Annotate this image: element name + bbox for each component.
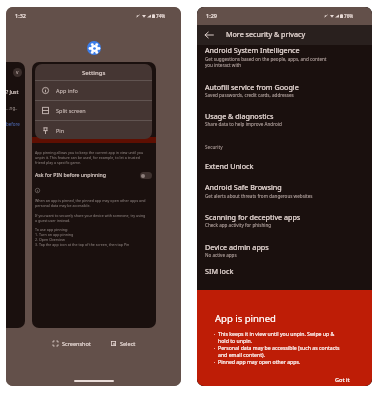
button[interactable]: Split screen xyxy=(35,101,152,120)
staticText: Settings xyxy=(82,69,106,77)
button[interactable] xyxy=(197,106,372,135)
staticText: Screenshot xyxy=(62,340,91,347)
staticText: Saved passwords, credit cards, addresses xyxy=(205,92,330,98)
staticText: Android Safe Browsing xyxy=(205,182,282,192)
staticText: Scanning for deceptive apps xyxy=(205,212,301,222)
staticText: SIM lock xyxy=(205,266,234,276)
staticText: · xyxy=(214,344,218,351)
button[interactable] xyxy=(197,207,372,236)
staticText: Security xyxy=(205,144,223,150)
button[interactable] xyxy=(197,40,372,69)
button[interactable] xyxy=(197,261,372,281)
button[interactable]: Screenshot xyxy=(53,340,91,347)
staticText: 1:29 xyxy=(206,12,217,19)
button[interactable]: Pin xyxy=(35,121,152,139)
staticText: Usage & diagnostics xyxy=(205,111,274,121)
button[interactable]: Select xyxy=(111,340,136,347)
staticText: To use app pinning: 1. Turn on app pinni… xyxy=(35,227,148,247)
staticText: When an app is pinned, the pinned app ma… xyxy=(35,198,148,208)
staticText: App pinning allows you to keep the curre… xyxy=(35,150,148,165)
button[interactable]: Back xyxy=(203,29,215,41)
staticText: Get suggestions based on the people, app… xyxy=(205,56,330,68)
button[interactable] xyxy=(197,177,372,206)
staticText: Pinned app may open other apps. xyxy=(218,358,342,365)
staticText: Share data to help improve Android xyxy=(205,121,330,127)
staticText: ...ng.. xyxy=(6,105,18,111)
staticText: 74% xyxy=(156,13,166,19)
staticText: This keeps it in view until you unpin. S… xyxy=(218,330,342,344)
button[interactable] xyxy=(197,156,372,176)
button[interactable] xyxy=(140,172,152,179)
button[interactable]: App info xyxy=(35,81,152,100)
staticText: Android System Intelligence xyxy=(205,45,300,55)
staticText: App info xyxy=(56,87,78,94)
staticText: No active apps xyxy=(205,252,330,258)
staticText: before xyxy=(6,121,20,127)
staticText: Split screen xyxy=(56,107,86,114)
staticText: Extend Unlock xyxy=(205,161,254,171)
staticText: App is pinned xyxy=(215,312,276,325)
staticText: · xyxy=(214,330,218,337)
staticText: 76% xyxy=(344,13,354,19)
staticText: 1:32 xyxy=(15,12,26,19)
staticText: V xyxy=(16,70,19,75)
staticText: Select xyxy=(120,340,136,347)
staticText: Got it xyxy=(335,376,350,384)
staticText: Pin xyxy=(56,127,65,134)
staticText: ? Just xyxy=(6,89,19,96)
staticText: Check app activity for phishing xyxy=(205,222,330,228)
staticText: Personal data may be accessible (such as… xyxy=(218,344,342,358)
staticText: Autofill service from Google xyxy=(205,82,299,92)
staticText: If you want to securely share your devic… xyxy=(35,213,148,223)
staticText: More security & privacy xyxy=(226,29,306,39)
button[interactable] xyxy=(197,237,372,266)
button[interactable]: Got it xyxy=(335,376,350,384)
staticText: Device admin apps xyxy=(205,242,269,252)
staticText: Get alerts about threats from dangerous … xyxy=(205,193,330,199)
staticText: Ask for PIN before unpinning xyxy=(35,171,106,178)
button[interactable] xyxy=(197,77,372,106)
staticText: · xyxy=(214,358,218,365)
